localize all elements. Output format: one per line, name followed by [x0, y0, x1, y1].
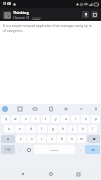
button[interactable]: u: [61, 115, 70, 123]
staticText: .: [80, 148, 81, 152]
staticText: z: [20, 137, 22, 141]
button[interactable]: x: [27, 135, 36, 143]
staticText: l: [92, 127, 93, 131]
staticText: It is a simple notepad application that …: [3, 24, 92, 28]
staticText: x: [31, 137, 33, 141]
staticText: 11:08: [3, 2, 12, 6]
staticText: u: [65, 117, 67, 121]
button[interactable]: Google: [2, 106, 8, 112]
button[interactable]: Mic: [93, 106, 99, 112]
button[interactable]: n: [67, 135, 76, 143]
button[interactable]: d: [26, 125, 36, 133]
staticText: Thinking: [13, 10, 29, 15]
button[interactable]: Emoji: [24, 145, 33, 154]
staticText: f: [41, 127, 43, 131]
button[interactable]: Symbols: [1, 145, 15, 154]
staticText: r: [35, 117, 37, 121]
button[interactable]: Settings: [63, 106, 69, 112]
button[interactable]: Translate: [17, 106, 23, 112]
staticText: t: [45, 117, 47, 121]
staticText: y: [55, 117, 57, 121]
staticText: Character 74: [13, 16, 30, 20]
button[interactable]: z: [16, 135, 26, 143]
staticText: ,: [19, 148, 20, 152]
button[interactable]: Backspace: [87, 135, 100, 143]
button[interactable]: q: [1, 115, 10, 123]
staticText: saved: [33, 17, 40, 20]
button[interactable]: More options: [91, 11, 98, 18]
staticText: m: [80, 137, 83, 141]
staticText: q: [5, 117, 7, 121]
staticText: ?123: [5, 148, 11, 152]
staticText: English: [50, 148, 59, 151]
button[interactable]: j: [68, 125, 77, 133]
staticText: w: [14, 117, 17, 121]
button[interactable]: l: [88, 125, 97, 133]
staticText: d: [30, 127, 32, 131]
staticText: e: [25, 117, 27, 121]
staticText: s: [19, 127, 21, 131]
button[interactable]: h: [58, 125, 67, 133]
button[interactable]: English: [34, 145, 75, 154]
button[interactable]: v: [47, 135, 56, 143]
button[interactable]: Shift: [1, 135, 15, 143]
button[interactable]: t: [41, 115, 50, 123]
button[interactable]: c: [37, 135, 46, 143]
button[interactable]: g: [48, 125, 57, 133]
button[interactable]: f: [37, 125, 47, 133]
staticText: c: [41, 137, 43, 141]
button[interactable]: Pin: [82, 11, 89, 18]
staticText: b: [61, 137, 63, 141]
staticText: v: [51, 137, 53, 141]
button[interactable]: k: [78, 125, 87, 133]
button[interactable]: Clipboard: [48, 106, 54, 112]
button[interactable]: Theme: [78, 106, 84, 112]
staticText: k: [82, 127, 84, 131]
button[interactable]: o: [81, 115, 90, 123]
button[interactable]: r: [31, 115, 40, 123]
button[interactable]: m: [77, 135, 86, 143]
button[interactable]: p: [91, 115, 100, 123]
staticText: o: [85, 117, 87, 121]
staticText: a: [8, 127, 10, 131]
button[interactable]: Back: [18, 169, 28, 179]
button[interactable]: e: [21, 115, 30, 123]
button[interactable]: Note icon: [3, 11, 11, 19]
button[interactable]: y: [51, 115, 60, 123]
staticText: j: [72, 127, 73, 131]
staticText: h: [62, 127, 64, 131]
button[interactable]: GIF: [32, 106, 38, 112]
staticText: of categories.: [3, 29, 24, 33]
staticText: i: [75, 117, 76, 121]
button[interactable]: w: [11, 115, 20, 123]
button[interactable]: Comma: [16, 145, 23, 154]
staticText: p: [95, 117, 97, 121]
button[interactable]: Home: [46, 169, 56, 179]
button[interactable]: i: [71, 115, 80, 123]
button[interactable]: Enter: [85, 145, 100, 154]
button[interactable]: s: [15, 125, 25, 133]
staticText: g: [52, 127, 54, 131]
button[interactable]: Recents: [73, 169, 83, 179]
staticText: n: [71, 137, 73, 141]
button[interactable]: a: [4, 125, 14, 133]
button[interactable]: b: [57, 135, 66, 143]
